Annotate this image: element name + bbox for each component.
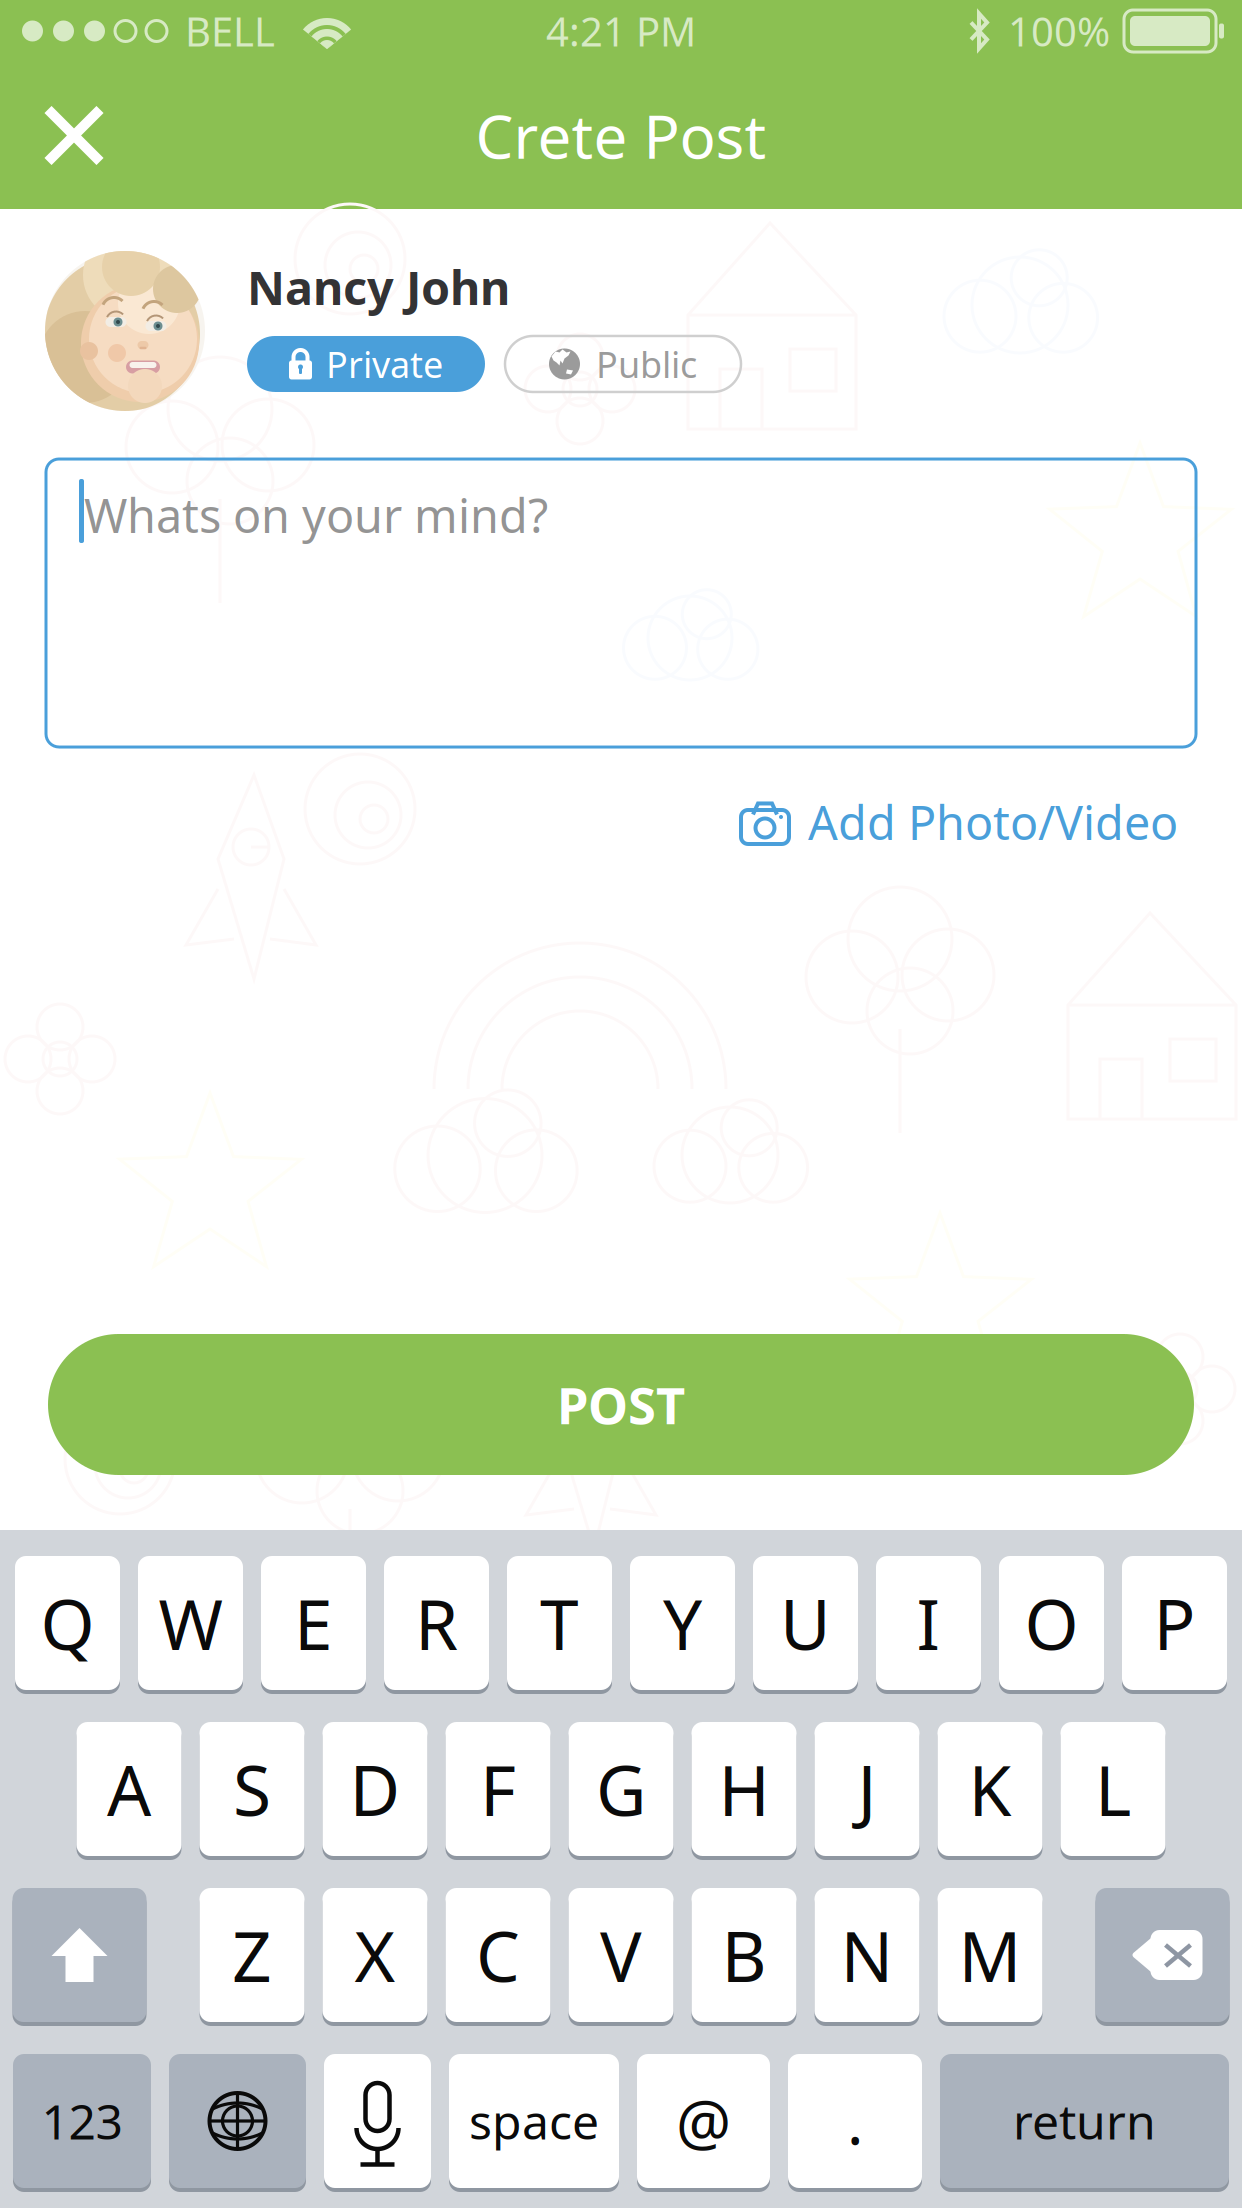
- button[interactable]: X: [322, 1886, 427, 2024]
- button[interactable]: W: [138, 1554, 243, 1692]
- button[interactable]: I: [876, 1554, 981, 1692]
- staticText: Private: [326, 340, 443, 388]
- staticText: N: [840, 1909, 893, 2001]
- staticText: H: [718, 1743, 769, 1835]
- button[interactable]: 123: [13, 2052, 151, 2190]
- staticText: Y: [663, 1577, 702, 1669]
- button[interactable]: Q: [15, 1554, 120, 1692]
- staticText: Q: [40, 1577, 94, 1669]
- staticText: Z: [232, 1909, 272, 2001]
- button[interactable]: @: [637, 2052, 770, 2190]
- button[interactable]: C: [445, 1886, 550, 2024]
- button[interactable]: U: [753, 1554, 858, 1692]
- button[interactable]: Close: [0, 62, 148, 209]
- staticText: V: [600, 1909, 642, 2001]
- staticText: U: [780, 1577, 831, 1669]
- button[interactable]: V: [568, 1886, 673, 2024]
- staticText: 4:21 PM: [546, 4, 696, 57]
- staticText: 123: [41, 2089, 122, 2153]
- button[interactable]: .: [788, 2052, 922, 2190]
- button[interactable]: Next keyboard: [169, 2052, 306, 2190]
- button[interactable]: K: [937, 1720, 1042, 1858]
- staticText: D: [349, 1743, 400, 1835]
- button[interactable]: POST: [48, 1334, 1194, 1475]
- staticText: 100%: [1008, 4, 1110, 57]
- staticText: C: [476, 1909, 520, 2001]
- button[interactable]: T: [507, 1554, 612, 1692]
- button[interactable]: O: [999, 1554, 1104, 1692]
- button[interactable]: Z: [199, 1886, 304, 2024]
- button[interactable]: Delete: [1095, 1886, 1229, 2024]
- staticText: K: [968, 1743, 1011, 1835]
- button[interactable]: N: [814, 1886, 919, 2024]
- staticText: Public: [596, 340, 697, 388]
- staticText: A: [107, 1743, 151, 1835]
- staticText: space: [469, 2089, 599, 2153]
- button[interactable]: Private: [247, 336, 485, 392]
- staticText: W: [158, 1577, 222, 1669]
- staticText: POST: [557, 1371, 685, 1438]
- button[interactable]: D: [322, 1720, 427, 1858]
- button[interactable]: F: [445, 1720, 550, 1858]
- button[interactable]: G: [568, 1720, 673, 1858]
- button[interactable]: Public: [505, 336, 741, 392]
- button[interactable]: B: [691, 1886, 796, 2024]
- staticText: O: [1024, 1577, 1078, 1669]
- staticText: Whats on your mind?: [84, 484, 548, 546]
- staticText: Add Photo/Video: [808, 791, 1178, 853]
- button[interactable]: Y: [630, 1554, 735, 1692]
- button[interactable]: E: [261, 1554, 366, 1692]
- staticText: R: [415, 1577, 458, 1669]
- staticText: M: [958, 1909, 1021, 2001]
- button[interactable]: L: [1060, 1720, 1165, 1858]
- button[interactable]: space: [449, 2052, 619, 2190]
- button[interactable]: H: [691, 1720, 796, 1858]
- staticText: Crete Post: [475, 96, 766, 175]
- staticText: J: [857, 1743, 876, 1835]
- button[interactable]: S: [199, 1720, 304, 1858]
- staticText: I: [916, 1577, 940, 1669]
- staticText: B: [721, 1909, 766, 2001]
- button[interactable]: R: [384, 1554, 489, 1692]
- staticText: F: [480, 1743, 516, 1835]
- staticText: E: [294, 1577, 333, 1669]
- staticText: return: [1013, 2089, 1156, 2153]
- staticText: T: [540, 1577, 579, 1669]
- button[interactable]: A: [76, 1720, 181, 1858]
- button[interactable]: Dictation: [324, 2052, 431, 2190]
- button[interactable]: return: [940, 2052, 1229, 2190]
- staticText: L: [1095, 1743, 1131, 1835]
- staticText: @: [676, 2080, 731, 2162]
- staticText: .: [847, 2080, 863, 2162]
- staticText: X: [354, 1909, 395, 2001]
- button[interactable]: P: [1122, 1554, 1227, 1692]
- button[interactable]: M: [937, 1886, 1042, 2024]
- staticText: S: [233, 1743, 271, 1835]
- button[interactable]: Add Photo/Video: [740, 775, 1178, 869]
- staticText: BELL: [185, 4, 275, 57]
- staticText: G: [596, 1743, 646, 1835]
- button[interactable]: J: [814, 1720, 919, 1858]
- staticText: Nancy John: [247, 256, 510, 318]
- button[interactable]: Shift: [12, 1886, 146, 2024]
- staticText: P: [1153, 1577, 1195, 1669]
